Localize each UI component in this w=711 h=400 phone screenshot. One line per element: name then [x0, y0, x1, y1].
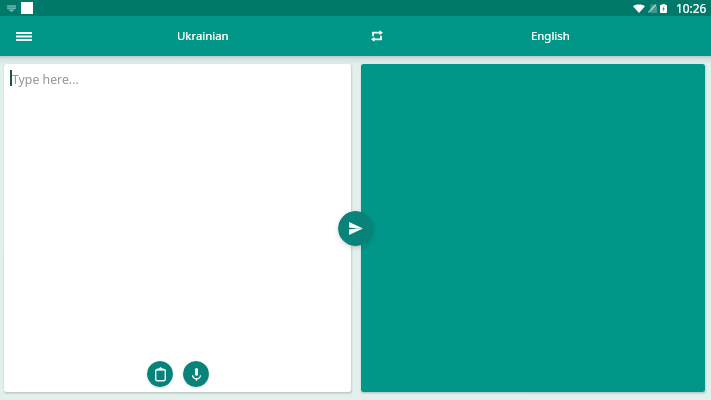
staticText: 10:26 [676, 0, 707, 16]
button[interactable]: Open navigation menu [6, 18, 42, 54]
button[interactable]: Type here... [4, 64, 351, 392]
staticText: Type here... [12, 71, 79, 88]
button[interactable]: Paste from clipboard [147, 361, 173, 387]
button[interactable]: Translate [338, 211, 373, 246]
button[interactable]: Swap languages [359, 16, 395, 56]
button[interactable]: Voice input [183, 361, 209, 387]
staticText: Ukrainian [177, 28, 229, 44]
button[interactable]: Ukrainian [143, 16, 263, 56]
button[interactable]: English [490, 16, 610, 56]
staticText: English [531, 28, 570, 44]
